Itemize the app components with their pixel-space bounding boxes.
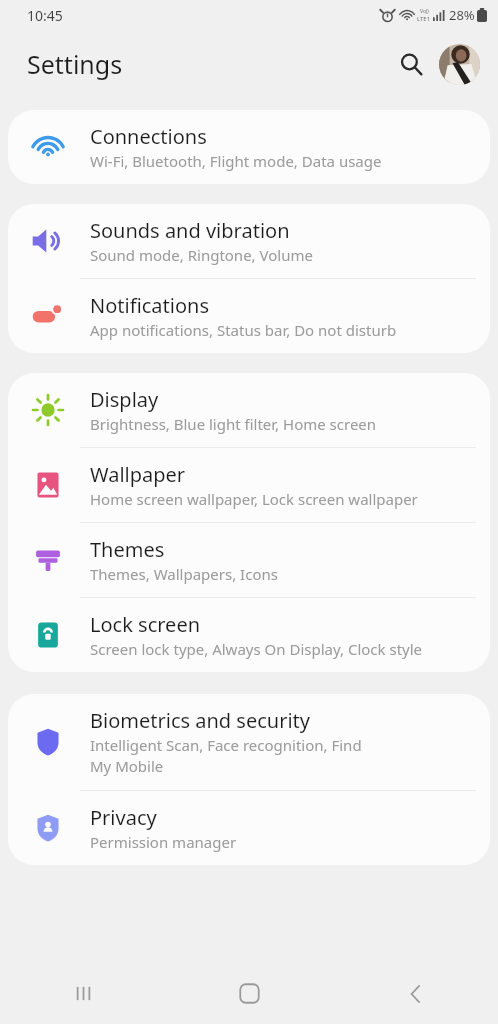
staticText: Themes, Wallpapers, Icons (90, 564, 278, 584)
staticText: VoJ) (420, 8, 429, 15)
button[interactable]: Lock screen (8, 598, 490, 672)
staticText: Wi-Fi, Bluetooth, Flight mode, Data usag… (90, 151, 382, 171)
button[interactable]: Sounds and vibration (8, 204, 490, 278)
staticText: Sound mode, Ringtone, Volume (90, 245, 313, 265)
staticText: Notifications (90, 292, 209, 319)
staticText: Screen lock type, Always On Display, Clo… (90, 639, 423, 659)
staticText: Permission manager (90, 832, 237, 852)
staticText: Themes (90, 536, 165, 563)
button[interactable]: Account (437, 42, 481, 86)
button[interactable]: Connections (8, 110, 490, 184)
button[interactable]: Notifications (8, 279, 490, 353)
staticText: Sounds and vibration (90, 217, 290, 244)
staticText: 10:45 (27, 6, 63, 25)
button[interactable]: Wallpaper (8, 448, 490, 522)
staticText: App notifications, Status bar, Do not di… (90, 320, 397, 340)
button[interactable]: Home (166, 963, 332, 1024)
button[interactable]: Biometrics and security (8, 694, 490, 790)
staticText: Home screen wallpaper, Lock screen wallp… (90, 489, 418, 509)
staticText: Lock screen (90, 611, 201, 638)
staticText: Display (90, 386, 159, 413)
staticText: Privacy (90, 804, 157, 831)
button[interactable]: Themes (8, 523, 490, 597)
staticText: Biometrics and security (90, 707, 310, 734)
staticText: Settings (27, 47, 123, 81)
staticText: Brightness, Blue light filter, Home scre… (90, 414, 377, 434)
button[interactable]: Back (332, 963, 498, 1024)
staticText: Connections (90, 123, 207, 150)
staticText: Wallpaper (90, 461, 186, 488)
staticText: Intelligent Scan, Face recognition, Find… (90, 735, 370, 777)
staticText: LTE1 (417, 15, 431, 23)
button[interactable]: Display (8, 373, 490, 447)
staticText: 28% (449, 6, 475, 24)
button[interactable]: Search (389, 42, 433, 86)
button[interactable]: Recent apps (0, 963, 166, 1024)
button[interactable]: Privacy (8, 791, 490, 865)
